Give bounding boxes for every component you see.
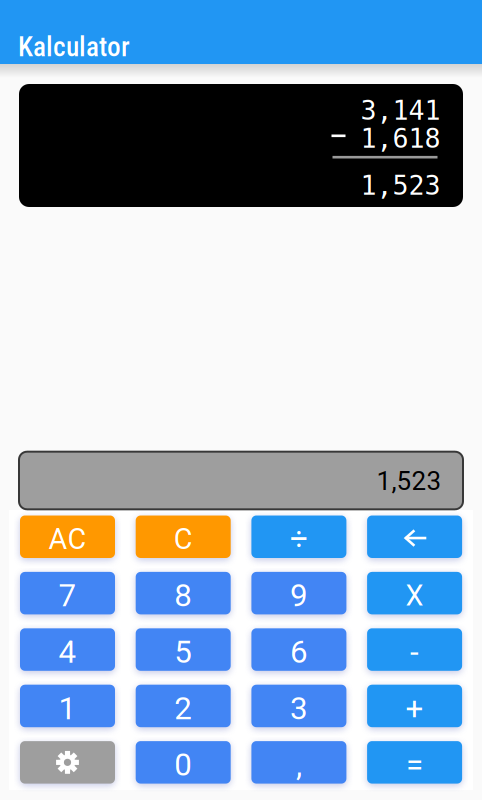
staticText: ÷	[290, 521, 308, 558]
staticText: 7	[58, 577, 76, 614]
staticText: ,	[296, 746, 302, 783]
staticText: 5	[174, 634, 192, 670]
button[interactable]	[251, 515, 346, 558]
button[interactable]	[367, 572, 462, 614]
button[interactable]: Settings	[20, 741, 115, 784]
staticText: =	[406, 746, 423, 783]
staticText: +	[406, 690, 424, 727]
staticText: 3	[290, 690, 308, 727]
button[interactable]	[251, 741, 346, 784]
button[interactable]	[136, 572, 231, 614]
staticText: C	[174, 522, 193, 556]
button[interactable]	[20, 515, 115, 558]
staticText: 3,141	[360, 95, 440, 126]
button[interactable]	[251, 628, 346, 671]
staticText: X	[406, 579, 424, 612]
button[interactable]: Backspace	[367, 515, 462, 558]
staticText: 1,523	[360, 170, 440, 201]
staticText: 1,618	[360, 123, 440, 154]
staticText: 6	[290, 634, 308, 670]
staticText: 9	[290, 577, 308, 614]
staticText: 4	[58, 634, 76, 670]
button[interactable]	[367, 685, 462, 727]
staticText: 0	[174, 746, 192, 783]
button[interactable]	[251, 685, 346, 727]
button[interactable]	[136, 741, 231, 784]
button[interactable]	[20, 572, 115, 614]
button[interactable]	[367, 741, 462, 784]
staticText: 2	[174, 690, 192, 727]
button[interactable]	[136, 515, 231, 558]
staticText: 1,523	[376, 466, 441, 496]
staticText: 8	[174, 577, 192, 614]
button[interactable]	[136, 628, 231, 671]
button[interactable]	[367, 628, 462, 671]
button[interactable]	[251, 572, 346, 614]
button[interactable]	[136, 685, 231, 727]
staticText: -	[410, 634, 419, 670]
button[interactable]	[20, 685, 115, 727]
staticText: Kalculator	[18, 31, 130, 63]
staticText: AC	[48, 522, 86, 556]
button[interactable]	[20, 628, 115, 671]
staticText: 1	[58, 690, 76, 727]
